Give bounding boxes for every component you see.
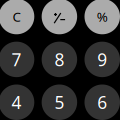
- staticText: %: [97, 8, 108, 25]
- staticText: 5: [54, 91, 64, 114]
- button[interactable]: C: [0, 0, 34, 34]
- button[interactable]: 8: [42, 42, 77, 77]
- button[interactable]: 6: [84, 84, 120, 120]
- button[interactable]: 4: [0, 84, 34, 120]
- staticText: 8: [54, 48, 64, 71]
- staticText: 7: [12, 48, 22, 71]
- button[interactable]: Plus minus: [42, 0, 77, 34]
- button[interactable]: %: [84, 0, 120, 34]
- staticText: 6: [97, 91, 107, 114]
- staticText: 4: [12, 91, 22, 114]
- staticText: C: [13, 8, 21, 25]
- staticText: 9: [97, 48, 107, 71]
- button[interactable]: 7: [0, 42, 34, 77]
- button[interactable]: 5: [42, 84, 77, 120]
- button[interactable]: 9: [84, 42, 120, 77]
